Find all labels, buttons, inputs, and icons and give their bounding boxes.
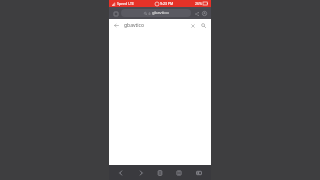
button[interactable]: Back: [114, 166, 128, 180]
button[interactable]: Tabs: [112, 10, 119, 17]
staticText: gbavtico: [124, 22, 188, 29]
button[interactable]: More options: [201, 10, 208, 17]
button[interactable]: gbavtico: [121, 9, 191, 17]
button[interactable]: Share: [193, 10, 200, 17]
staticText: Speed LTE: [117, 1, 134, 6]
staticText: 9:23 PM: [160, 1, 174, 6]
staticText: gbavtico: [152, 10, 169, 16]
staticText: 26%: [195, 1, 202, 6]
button[interactable]: Forward: [134, 166, 148, 180]
button[interactable]: Home: [153, 166, 167, 180]
button[interactable]: Tabs: [172, 166, 186, 180]
button[interactable]: Search: [199, 21, 208, 30]
button[interactable]: Recents: [192, 166, 206, 180]
button[interactable]: Clear: [188, 21, 197, 30]
button[interactable]: Back: [112, 21, 121, 30]
